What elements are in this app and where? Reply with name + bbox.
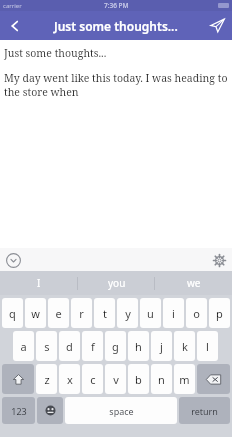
staticText: w xyxy=(31,306,40,321)
staticText: b xyxy=(135,372,142,387)
button[interactable]: b xyxy=(128,364,149,394)
button[interactable]: t xyxy=(94,298,115,328)
button[interactable]: r xyxy=(71,298,92,328)
staticText: a xyxy=(20,339,27,354)
button[interactable]: o xyxy=(186,298,207,328)
button[interactable]: Send xyxy=(202,11,232,40)
button[interactable]: v xyxy=(105,364,126,394)
button[interactable]: z xyxy=(36,364,57,394)
staticText: o xyxy=(193,306,200,321)
button[interactable]: l xyxy=(197,331,218,361)
button[interactable]: i xyxy=(163,298,184,328)
button[interactable]: e xyxy=(48,298,69,328)
button[interactable]: w xyxy=(25,298,46,328)
staticText: r xyxy=(79,306,84,321)
button[interactable]: space xyxy=(65,397,177,424)
button[interactable]: 123 xyxy=(2,397,35,424)
button[interactable]: Back xyxy=(0,11,30,40)
staticText: space xyxy=(109,405,134,417)
staticText: l xyxy=(206,339,209,354)
staticText: h xyxy=(135,339,142,354)
button[interactable]: n xyxy=(151,364,172,394)
staticText: Just some thoughts... xyxy=(54,18,178,34)
button[interactable]: u xyxy=(140,298,161,328)
button[interactable]: c xyxy=(82,364,103,394)
staticText: e xyxy=(55,306,62,321)
button[interactable]: return xyxy=(179,397,230,424)
button[interactable]: x xyxy=(59,364,80,394)
button[interactable]: q xyxy=(2,298,23,328)
staticText: z xyxy=(44,372,50,387)
staticText: x xyxy=(67,372,73,387)
staticText: q xyxy=(9,306,16,321)
staticText: Just some thoughts... xyxy=(4,46,107,60)
staticText: g xyxy=(112,339,119,354)
staticText: p xyxy=(216,306,223,321)
staticText: v xyxy=(113,372,119,387)
staticText: t xyxy=(103,306,107,321)
button[interactable]: a xyxy=(13,331,34,361)
button[interactable]: j xyxy=(151,331,172,361)
staticText: y xyxy=(125,306,131,321)
staticText: i xyxy=(172,306,175,321)
button[interactable]: Emoji xyxy=(37,397,63,424)
button[interactable]: g xyxy=(105,331,126,361)
button[interactable]: Hide keyboard xyxy=(4,251,22,269)
staticText: u xyxy=(147,306,154,321)
button[interactable]: you xyxy=(78,271,155,295)
button[interactable]: h xyxy=(128,331,149,361)
staticText: 7:36 PM xyxy=(104,1,129,10)
staticText: 123 xyxy=(11,405,27,417)
staticText: you xyxy=(108,276,126,290)
staticText: n xyxy=(158,372,165,387)
button[interactable]: m xyxy=(174,364,195,394)
button[interactable]: y xyxy=(117,298,138,328)
staticText: k xyxy=(182,339,188,354)
button[interactable]: we xyxy=(155,271,232,295)
staticText: c xyxy=(90,372,96,387)
staticText: m xyxy=(179,372,190,387)
button[interactable]: p xyxy=(209,298,230,328)
button[interactable]: Settings xyxy=(210,251,228,269)
staticText: I xyxy=(37,276,41,290)
staticText: s xyxy=(44,339,50,354)
button[interactable]: d xyxy=(59,331,80,361)
button[interactable]: I xyxy=(0,271,78,295)
staticText: My day went like this today. I was headi… xyxy=(4,71,228,99)
staticText: d xyxy=(66,339,73,354)
button[interactable]: f xyxy=(82,331,103,361)
staticText: return xyxy=(191,405,218,417)
button[interactable]: Backspace xyxy=(197,364,230,394)
staticText: carrier xyxy=(3,2,22,10)
button[interactable]: k xyxy=(174,331,195,361)
button[interactable]: Shift xyxy=(2,364,34,394)
staticText: we xyxy=(187,276,201,290)
button[interactable]: s xyxy=(36,331,57,361)
staticText: j xyxy=(160,339,163,354)
staticText: f xyxy=(91,339,95,354)
